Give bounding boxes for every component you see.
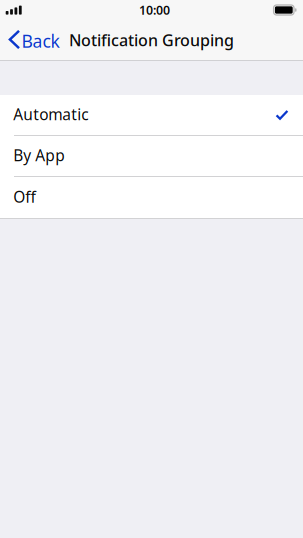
staticText: 10:00	[139, 2, 170, 18]
staticText: Notification Grouping	[69, 29, 234, 51]
button[interactable]: By App	[0, 136, 303, 176]
staticText: Automatic	[13, 104, 88, 125]
staticText: Back	[22, 29, 60, 53]
button[interactable]: Back	[0, 24, 68, 58]
button[interactable]: Off	[0, 177, 303, 218]
staticText: By App	[13, 145, 65, 166]
button[interactable]: Automatic	[0, 95, 303, 135]
staticText: Off	[13, 186, 36, 207]
